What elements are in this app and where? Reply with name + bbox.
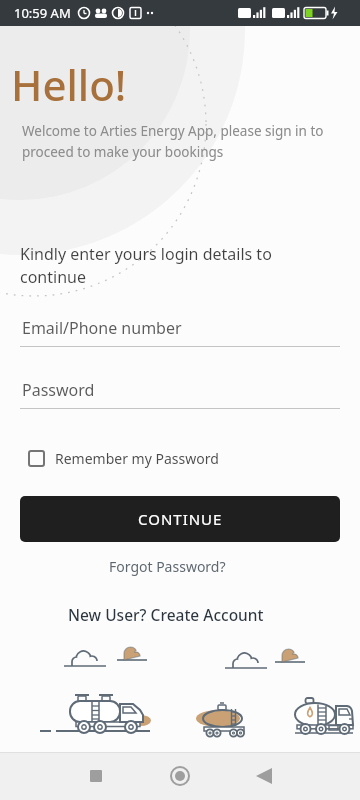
button[interactable] bbox=[156, 752, 204, 800]
staticText: Kindly enter yours login details to cont… bbox=[20, 243, 272, 288]
button[interactable] bbox=[72, 752, 120, 800]
staticText: CONTINUE bbox=[138, 509, 223, 529]
staticText: Email/Phone number bbox=[22, 317, 182, 339]
button[interactable]: Forgot Password? bbox=[109, 557, 226, 576]
button[interactable]: New User? Create Account bbox=[68, 604, 264, 625]
staticText: 10:59 AM bbox=[14, 4, 71, 22]
button[interactable]: Remember my Password bbox=[28, 449, 219, 468]
staticText: Remember my Password bbox=[55, 449, 219, 468]
button[interactable]: Password bbox=[20, 379, 340, 409]
button[interactable]: Email/Phone number bbox=[20, 317, 340, 347]
staticText: Hello! bbox=[11, 56, 127, 113]
staticText: Welcome to Arties Energy App, please sig… bbox=[22, 122, 324, 161]
button[interactable] bbox=[240, 752, 288, 800]
staticText: Password bbox=[22, 379, 95, 401]
button[interactable]: CONTINUE bbox=[20, 496, 340, 542]
